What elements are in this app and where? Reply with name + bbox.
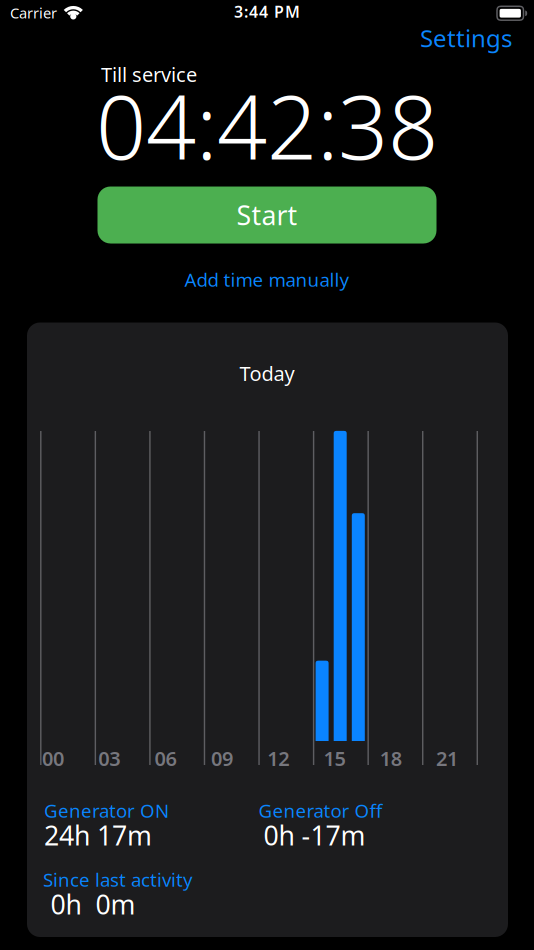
staticText: Today bbox=[239, 360, 294, 387]
button[interactable]: Settings bbox=[420, 22, 512, 54]
staticText: 3:44 PM bbox=[234, 1, 300, 22]
staticText: 06 bbox=[155, 745, 177, 772]
staticText: Settings bbox=[420, 22, 512, 54]
staticText: 24h 17m bbox=[44, 817, 152, 853]
staticText: 09 bbox=[211, 745, 233, 772]
staticText: 15 bbox=[323, 745, 345, 772]
staticText: Till service bbox=[101, 61, 197, 88]
staticText: Start bbox=[236, 197, 297, 233]
staticText: Generator Off bbox=[258, 798, 382, 823]
staticText: 0h 0m bbox=[50, 886, 135, 922]
staticText: 12 bbox=[267, 745, 289, 772]
staticText: 21 bbox=[436, 745, 458, 772]
button[interactable]: Start bbox=[97, 186, 436, 243]
button[interactable]: Add time manually bbox=[184, 267, 349, 292]
staticText: Carrier bbox=[10, 3, 57, 22]
staticText: Since last activity bbox=[43, 867, 193, 892]
staticText: 00 bbox=[42, 745, 64, 772]
staticText: Add time manually bbox=[184, 267, 349, 292]
staticText: 03 bbox=[98, 745, 120, 772]
staticText: Generator ON bbox=[44, 798, 169, 823]
staticText: 0h -17m bbox=[263, 817, 365, 853]
staticText: 04:42:38 bbox=[96, 67, 438, 184]
staticText: 18 bbox=[380, 745, 402, 772]
